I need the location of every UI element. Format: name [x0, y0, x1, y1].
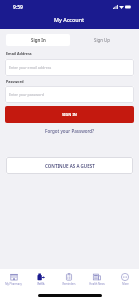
- button[interactable]: Reminders: [55, 273, 83, 286]
- button[interactable]: CONTINUE AS A GUEST: [6, 157, 133, 174]
- staticText: SIGN IN: [62, 112, 77, 117]
- button[interactable]: More: [111, 273, 139, 286]
- button[interactable]: SIGN IN: [5, 106, 134, 123]
- staticText: CONTINUE AS A GUEST: [45, 163, 95, 169]
- staticText: 9:59: [13, 4, 23, 11]
- staticText: Refills: [37, 282, 45, 286]
- staticText: Sign In: [31, 37, 46, 43]
- button[interactable]: Forgot your Password?: [45, 128, 95, 134]
- staticText: Sign Up: [94, 37, 111, 43]
- staticText: Password: [6, 79, 24, 84]
- staticText: Email Address: [6, 51, 32, 56]
- button[interactable]: Health News: [83, 273, 111, 286]
- staticText: Reminders: [62, 282, 76, 286]
- button[interactable]: Sign Up: [70, 34, 134, 46]
- staticText: Health News: [89, 282, 105, 286]
- staticText: More: [122, 282, 129, 286]
- button[interactable]: My Pharmacy: [0, 273, 27, 286]
- staticText: My Pharmacy: [5, 282, 22, 286]
- staticText: Enter your password: [9, 92, 44, 97]
- button[interactable]: Sign In: [6, 34, 70, 46]
- staticText: Enter your email address: [9, 65, 52, 70]
- staticText: My Account: [54, 16, 85, 23]
- button[interactable]: Refills: [27, 273, 55, 286]
